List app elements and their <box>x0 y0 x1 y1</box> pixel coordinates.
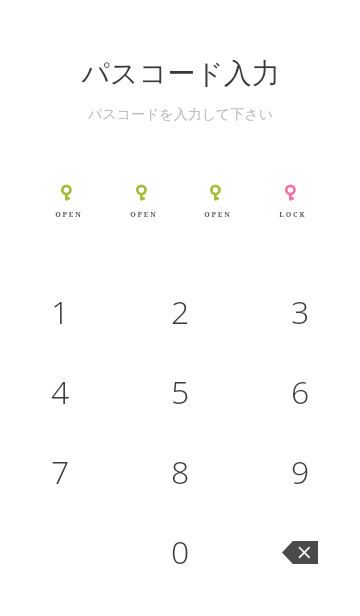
button[interactable]: 6 <box>240 352 360 432</box>
staticText: 7 <box>51 450 70 494</box>
button[interactable]: Delete <box>240 512 360 592</box>
staticText: 8 <box>171 450 190 494</box>
button[interactable]: 5 <box>120 352 240 432</box>
button[interactable]: 0 <box>120 512 240 592</box>
staticText: 4 <box>51 370 70 414</box>
button[interactable]: 2 <box>120 272 240 352</box>
staticText: 6 <box>291 370 310 414</box>
staticText: 5 <box>171 370 190 414</box>
staticText: 1 <box>51 290 70 334</box>
staticText: パスコードを入力して下さい <box>88 106 273 124</box>
staticText: 9 <box>291 450 310 494</box>
button[interactable]: 9 <box>240 432 360 512</box>
staticText: L O C K <box>279 210 305 220</box>
button[interactable]: 7 <box>0 432 120 512</box>
staticText: 0 <box>171 530 190 574</box>
button[interactable]: 8 <box>120 432 240 512</box>
staticText: 2 <box>171 290 190 334</box>
staticText: O P E N <box>55 210 81 220</box>
button[interactable]: 4 <box>0 352 120 432</box>
staticText: O P E N <box>130 210 156 220</box>
button[interactable]: 3 <box>240 272 360 352</box>
staticText: 3 <box>291 290 310 334</box>
button[interactable]: 1 <box>0 272 120 352</box>
staticText: O P E N <box>204 210 230 220</box>
staticText: パスコード入力 <box>81 56 280 91</box>
